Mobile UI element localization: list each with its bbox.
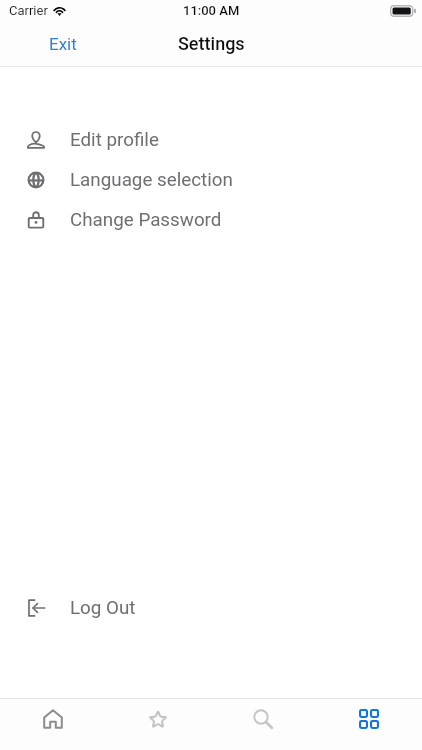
staticText: Settings [178,33,245,54]
button[interactable]: Log Out [0,590,422,626]
button[interactable]: Search [210,699,316,738]
button[interactable]: Favorites [105,699,210,738]
staticText: 11:00 AM [183,3,240,18]
staticText: Exit [49,34,77,54]
button[interactable]: Apps [316,699,422,738]
button[interactable]: Change Password [0,202,422,238]
staticText: Edit profile [70,129,159,151]
button[interactable]: Language selection [0,162,422,198]
button[interactable]: Home [0,699,105,738]
button[interactable]: Edit profile [0,122,422,158]
staticText: Log Out [70,597,136,619]
staticText: Carrier [9,3,48,18]
staticText: Change Password [70,209,222,231]
staticText: Language selection [70,169,233,191]
button[interactable]: Exit [39,28,87,62]
